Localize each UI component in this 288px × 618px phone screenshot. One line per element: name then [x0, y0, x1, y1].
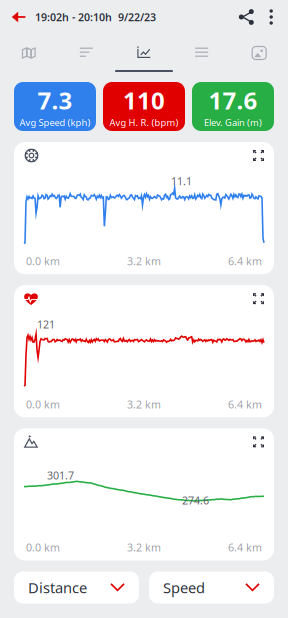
button[interactable]: Photos: [230, 34, 288, 72]
button[interactable]: Share: [232, 7, 261, 27]
staticText: Elev. Gain (m): [204, 116, 262, 129]
button[interactable]: Charts: [115, 34, 173, 72]
staticText: 6.4 km: [228, 397, 262, 411]
staticText: 11.1: [171, 174, 192, 188]
staticText: 3.2 km: [127, 397, 161, 411]
button[interactable]: Distance: [14, 571, 139, 603]
staticText: 0.0 km: [26, 397, 60, 411]
staticText: 301.7: [47, 468, 74, 482]
staticText: 3.2 km: [127, 540, 161, 554]
staticText: 17.6: [208, 84, 257, 116]
staticText: 3.2 km: [127, 254, 161, 268]
button[interactable]: 110: [103, 82, 185, 131]
staticText: Avg H. R. (bpm): [109, 116, 178, 129]
staticText: 0.0 km: [26, 540, 60, 554]
button[interactable]: 7.3: [14, 82, 96, 131]
button[interactable]: Expand chart: [253, 150, 264, 161]
staticText: 274.6: [182, 493, 209, 507]
button[interactable]: Back: [6, 7, 31, 27]
button[interactable]: More options: [261, 7, 282, 27]
button[interactable]: Expand chart: [253, 436, 264, 447]
staticText: 6.4 km: [228, 254, 262, 268]
staticText: 121: [37, 317, 55, 331]
staticText: Distance: [28, 578, 87, 597]
staticText: Avg Speed (kph): [19, 116, 90, 129]
staticText: 19:02h - 20:10h 9/22/23: [35, 10, 156, 24]
staticText: 0.0 km: [26, 254, 60, 268]
button[interactable]: Expand chart: [253, 293, 264, 304]
button[interactable]: Laps: [173, 34, 230, 72]
button[interactable]: Map: [0, 34, 58, 72]
button[interactable]: Splits: [58, 34, 115, 72]
staticText: 7.3: [37, 84, 72, 116]
button[interactable]: Speed: [149, 571, 274, 603]
staticText: 110: [123, 84, 165, 116]
button[interactable]: 17.6: [192, 82, 274, 131]
staticText: Speed: [163, 578, 205, 597]
staticText: 6.4 km: [228, 540, 262, 554]
